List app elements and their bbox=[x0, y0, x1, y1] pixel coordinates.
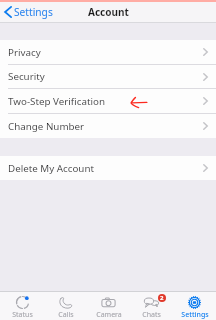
staticText: Privacy bbox=[8, 46, 41, 59]
other: Back bbox=[4, 6, 12, 18]
staticText: Camera bbox=[96, 310, 122, 320]
staticText: Change Number bbox=[8, 120, 85, 133]
staticText: Delete My Account bbox=[8, 162, 95, 175]
staticText: Security bbox=[8, 70, 45, 83]
button[interactable]: Calls bbox=[44, 293, 87, 320]
button[interactable]: Back bbox=[0, 5, 57, 19]
button[interactable]: Delete My Account bbox=[0, 156, 216, 180]
staticText: Account bbox=[88, 5, 129, 19]
staticText: 2 bbox=[160, 294, 164, 302]
button[interactable]: Change Number bbox=[0, 114, 216, 138]
button[interactable]: Privacy bbox=[0, 40, 216, 64]
staticText: Settings bbox=[14, 5, 53, 19]
staticText: Chats bbox=[142, 310, 161, 320]
button[interactable]: Camera bbox=[87, 293, 130, 320]
staticText: Status bbox=[12, 310, 33, 320]
button[interactable]: Two-Step Verification bbox=[0, 89, 216, 113]
button[interactable]: Security bbox=[0, 65, 216, 88]
button[interactable]: Status bbox=[0, 293, 44, 320]
staticText: Calls bbox=[58, 310, 74, 320]
staticText: Two-Step Verification bbox=[8, 95, 105, 108]
button[interactable]: Settings bbox=[173, 293, 216, 320]
staticText: Settings bbox=[181, 310, 209, 320]
button[interactable]: 2 bbox=[130, 293, 173, 320]
